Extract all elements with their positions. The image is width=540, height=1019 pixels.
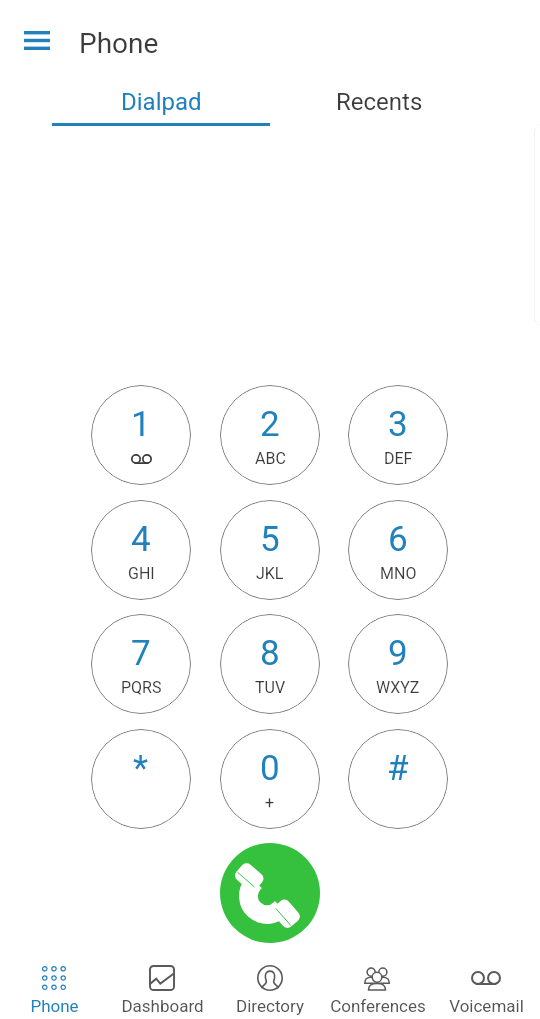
staticText: 5 bbox=[260, 519, 280, 560]
button[interactable]: 1 bbox=[91, 385, 191, 485]
staticText: 1 bbox=[131, 404, 151, 445]
button[interactable]: # bbox=[348, 729, 448, 829]
staticText: Directory bbox=[236, 996, 304, 1016]
button[interactable]: Dialpad bbox=[52, 78, 270, 126]
staticText: Voicemail bbox=[449, 996, 524, 1016]
button[interactable]: 4 bbox=[91, 500, 191, 600]
staticText: 6 bbox=[388, 519, 408, 560]
staticText: JKL bbox=[256, 564, 284, 583]
staticText: 9 bbox=[388, 633, 408, 674]
button[interactable]: 6 bbox=[348, 500, 448, 600]
button[interactable]: 3 bbox=[348, 385, 448, 485]
staticText: 0 bbox=[260, 748, 280, 789]
button[interactable]: 8 bbox=[220, 614, 320, 714]
button[interactable]: Open navigation menu bbox=[24, 31, 50, 50]
staticText: 7 bbox=[131, 633, 151, 674]
button[interactable]: 9 bbox=[348, 614, 448, 714]
button[interactable]: 0 bbox=[220, 729, 320, 829]
staticText: WXYZ bbox=[376, 678, 420, 697]
staticText: DEF bbox=[384, 449, 413, 468]
staticText: ABC bbox=[255, 449, 286, 468]
staticText: Recents bbox=[336, 88, 423, 116]
button[interactable]: Conferences bbox=[324, 955, 432, 1019]
staticText: 2 bbox=[260, 404, 280, 445]
staticText: + bbox=[265, 793, 275, 812]
staticText: Phone bbox=[30, 996, 79, 1016]
button[interactable]: Dashboard bbox=[108, 955, 216, 1019]
button[interactable]: Phone bbox=[0, 955, 108, 1019]
staticText: Dashboard bbox=[121, 996, 204, 1016]
staticText: 8 bbox=[260, 633, 280, 674]
button[interactable]: 5 bbox=[220, 500, 320, 600]
staticText: Conferences bbox=[330, 996, 426, 1016]
staticText: PQRS bbox=[121, 678, 162, 697]
staticText: MNO bbox=[380, 564, 417, 583]
button[interactable]: Call bbox=[220, 843, 320, 943]
button[interactable]: 2 bbox=[220, 385, 320, 485]
button[interactable]: 7 bbox=[91, 614, 191, 714]
button[interactable]: * bbox=[91, 729, 191, 829]
staticText: TUV bbox=[255, 678, 286, 697]
staticText: Phone bbox=[79, 27, 159, 60]
staticText: 4 bbox=[131, 519, 151, 560]
staticText: Dialpad bbox=[121, 88, 202, 116]
button[interactable]: Voicemail bbox=[432, 955, 540, 1019]
staticText: 3 bbox=[388, 404, 408, 445]
staticText: # bbox=[387, 748, 409, 789]
staticText: * bbox=[133, 748, 149, 789]
button[interactable]: Directory bbox=[216, 955, 324, 1019]
button[interactable]: Recents bbox=[270, 78, 488, 126]
staticText: GHI bbox=[128, 564, 155, 583]
